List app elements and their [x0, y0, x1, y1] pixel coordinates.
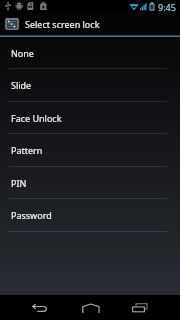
- button[interactable]: PIN: [0, 167, 180, 198]
- staticText: PIN: [11, 177, 27, 189]
- button[interactable]: None: [0, 37, 180, 68]
- staticText: None: [11, 47, 34, 59]
- staticText: Slide: [11, 79, 32, 91]
- staticText: 9:45: [158, 1, 176, 13]
- button[interactable]: Face Unlock: [0, 102, 180, 133]
- button[interactable]: Slide: [0, 69, 180, 101]
- button[interactable]: Back: [18, 295, 62, 320]
- button[interactable]: Select screen lock: [0, 13, 180, 34]
- staticText: Select screen lock: [25, 18, 100, 30]
- staticText: Pattern: [11, 144, 43, 156]
- staticText: Face Unlock: [11, 112, 62, 124]
- button[interactable]: Recent apps: [118, 295, 162, 320]
- button[interactable]: Password: [0, 199, 180, 231]
- button[interactable]: Pattern: [0, 134, 180, 166]
- button[interactable]: Home: [68, 295, 112, 320]
- staticText: Password: [11, 209, 52, 221]
